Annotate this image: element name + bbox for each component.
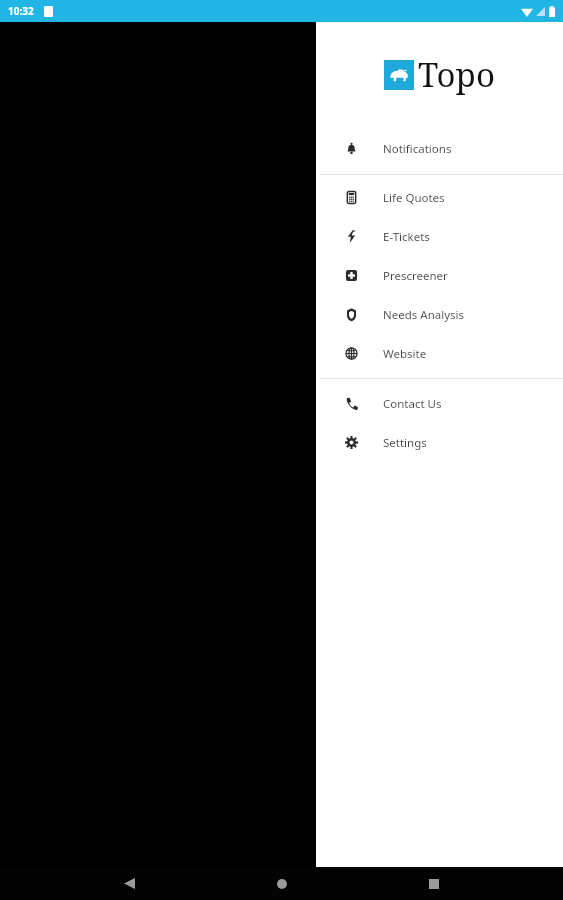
button[interactable]: Back [105, 867, 153, 900]
button[interactable]: Needs Analysis [316, 295, 563, 334]
button[interactable]: Home [258, 867, 306, 900]
staticText: Settings [383, 435, 427, 451]
staticText: Website [383, 346, 427, 362]
button[interactable]: Website [316, 334, 563, 373]
staticText: Life Quotes [383, 190, 445, 206]
staticText: Needs Analysis [383, 307, 465, 323]
staticText: Contact Us [383, 396, 442, 412]
staticText: E-Tickets [383, 229, 430, 245]
button[interactable]: Prescreener [316, 256, 563, 295]
staticText: Topo [418, 52, 495, 97]
button[interactable]: Life Quotes [316, 178, 563, 217]
button[interactable]: Contact Us [316, 384, 563, 423]
button[interactable]: E-Tickets [316, 217, 563, 256]
staticText: 10:32 [8, 4, 34, 18]
button[interactable]: Recent apps [410, 867, 458, 900]
staticText: Notifications [383, 141, 452, 157]
button[interactable]: Notifications [316, 126, 563, 171]
staticText: Prescreener [383, 268, 448, 284]
button[interactable]: Settings [316, 423, 563, 462]
